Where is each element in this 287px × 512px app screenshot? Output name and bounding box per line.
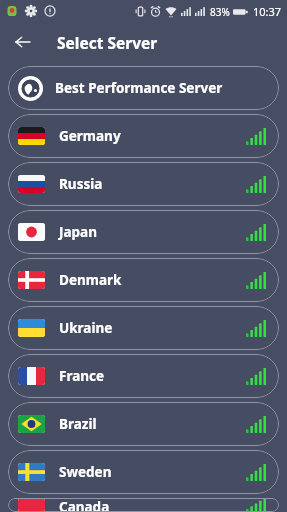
staticText: Denmark	[59, 271, 122, 289]
button[interactable]: Japan	[8, 210, 279, 254]
staticText: Germany	[59, 127, 121, 145]
button[interactable]: Sweden	[8, 450, 279, 494]
staticText: Russia	[59, 175, 103, 193]
button[interactable]: Brazil	[8, 402, 279, 446]
button[interactable]: Russia	[8, 162, 279, 206]
staticText: Canada	[59, 498, 110, 512]
button[interactable]: Denmark	[8, 258, 279, 302]
staticText: Brazil	[59, 415, 97, 433]
button[interactable]: France	[8, 354, 279, 398]
staticText: Select Server	[57, 32, 158, 53]
staticText: 83%	[210, 5, 230, 19]
staticText: France	[59, 367, 105, 385]
staticText: Best Performance Server	[55, 79, 223, 97]
button[interactable]: Ukraine	[8, 306, 279, 350]
staticText: Sweden	[59, 463, 112, 481]
staticText: Japan	[59, 223, 97, 241]
button[interactable]: Canada	[8, 498, 279, 512]
button[interactable]: Germany	[8, 114, 279, 158]
button[interactable]: Back	[10, 29, 36, 55]
staticText: Ukraine	[59, 319, 113, 337]
staticText: 10:37	[253, 4, 282, 19]
button[interactable]: Best Performance Server	[8, 66, 279, 110]
